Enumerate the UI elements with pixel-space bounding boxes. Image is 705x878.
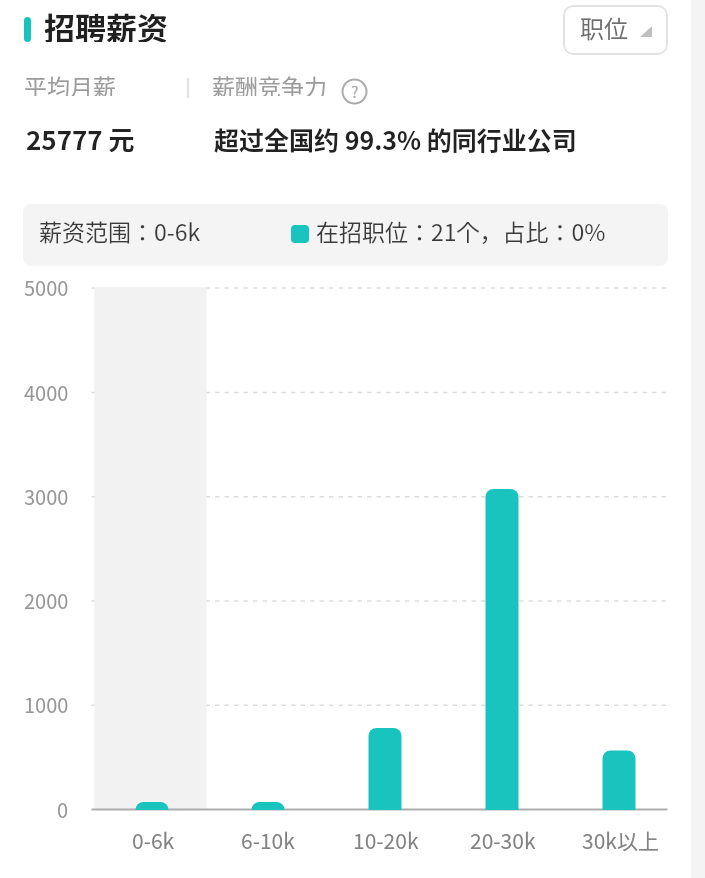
staticText: 20-30k [470,825,536,853]
button[interactable]: 职位 [563,5,668,55]
staticText: 5000 [24,273,69,301]
staticText: 职位 [580,10,628,45]
staticText: 30k以上 [582,825,659,853]
staticText: 2000 [24,586,69,614]
staticText: 3000 [24,482,69,510]
staticText: 10-20k [353,825,419,853]
staticText: 25777 元 [26,120,135,152]
staticText: ? [351,79,359,102]
staticText: 4000 [24,378,69,406]
staticText: 薪资范围：0-6k [39,214,201,247]
staticText: 薪酬竞争力 [212,69,327,96]
staticText: 平均月薪 [24,69,116,96]
staticText: 超过全国约 99.3% 的同行业公司 [214,121,577,153]
button[interactable]: ? [341,78,368,105]
staticText: 0-6k [132,825,175,853]
staticText: 1000 [24,690,69,718]
staticText: 0 [57,795,69,823]
staticText: 在招职位：21个，占比：0% [316,214,606,247]
staticText: 招聘薪资 [44,4,168,42]
staticText: 6-10k [241,825,295,853]
